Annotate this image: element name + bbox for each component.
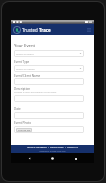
button[interactable]: Home xyxy=(48,154,57,163)
staticText: Terms & Conditions | Privacy Policy | Co… xyxy=(27,146,78,149)
staticText: Select an event xyxy=(16,52,34,55)
staticText: Choose File xyxy=(18,129,31,132)
button[interactable] xyxy=(14,95,84,102)
staticText: Your Event xyxy=(14,43,36,49)
staticText: Date xyxy=(14,107,21,111)
button[interactable]: Choose File xyxy=(14,126,84,133)
staticText: Powered by Trusted Trace 2025 xyxy=(39,150,66,152)
staticText: Event/Client Name xyxy=(14,74,41,78)
button[interactable] xyxy=(14,112,84,119)
staticText: Event Type xyxy=(14,60,30,64)
staticText: Select an option xyxy=(16,67,35,70)
button[interactable]: Recents xyxy=(71,154,80,163)
staticText: Description xyxy=(14,87,31,91)
button[interactable]: Back xyxy=(25,154,34,163)
staticText: Event Photo xyxy=(14,121,31,125)
staticText: Trusted xyxy=(22,27,39,33)
button[interactable]: Select an option xyxy=(14,65,84,72)
button[interactable] xyxy=(14,78,84,85)
staticText: Provide a short description of the event xyxy=(14,91,57,94)
staticText: Trace xyxy=(39,27,51,33)
button[interactable]: Menu xyxy=(85,26,92,33)
button[interactable]: Select an event xyxy=(14,50,84,57)
